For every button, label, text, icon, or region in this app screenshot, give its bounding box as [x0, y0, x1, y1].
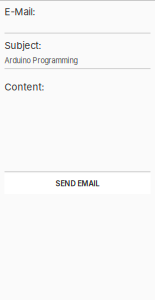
staticText: E-Mail:: [4, 6, 35, 18]
staticText: Subject:: [4, 40, 41, 51]
staticText: SEND EMAIL: [55, 179, 99, 188]
button[interactable]: Content:: [4, 69, 150, 172]
staticText: Content:: [4, 81, 44, 93]
button[interactable]: Subject:: [4, 34, 150, 69]
button[interactable]: SEND EMAIL: [4, 173, 150, 194]
button[interactable]: E-Mail:: [4, 1, 150, 34]
staticText: Arduino Programming: [4, 56, 77, 65]
